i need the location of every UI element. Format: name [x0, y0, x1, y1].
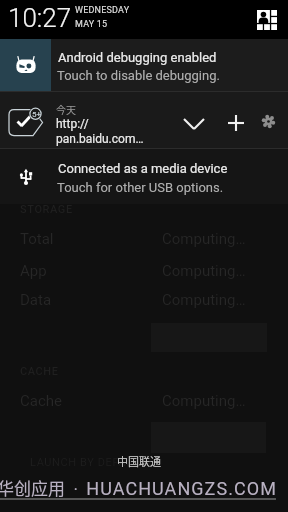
staticText: 中国联通 [117, 453, 161, 469]
staticText: CACHE [20, 365, 59, 378]
staticText: Data [20, 291, 52, 309]
staticText: 10:27 [8, 3, 72, 33]
button[interactable]: Notification settings [252, 105, 285, 138]
button[interactable]: Add [219, 106, 252, 139]
staticText: Touch for other USB options. [57, 180, 224, 195]
staticText: Cache [20, 392, 62, 410]
staticText: WEDNESDAY [75, 5, 130, 16]
staticText: 华创应用 · HUACHUANGZS.COM [0, 475, 277, 500]
staticText: Connected as a media device [58, 161, 228, 176]
staticText: 5+ [32, 110, 42, 119]
staticText: MAY 15 [75, 19, 108, 30]
staticText: Computing… [162, 291, 246, 309]
button[interactable]: Expand [177, 107, 210, 140]
staticText: Computing… [162, 262, 246, 280]
staticText: App [20, 262, 47, 280]
staticText: pan.baidu.com… [56, 132, 144, 146]
staticText: Total [20, 230, 54, 248]
staticText: STORAGE [20, 203, 73, 216]
staticText: Computing… [162, 230, 246, 248]
staticText: http:// [56, 117, 89, 131]
button[interactable]: Android debugging enabled [0, 39, 288, 91]
staticText: Android debugging enabled [58, 50, 217, 65]
staticText: Touch to disable debugging. [57, 68, 220, 83]
button[interactable]: Quick settings [252, 5, 282, 35]
staticText: 今天 [56, 102, 76, 116]
staticText: LAUNCH BY DEFAULT [30, 456, 146, 469]
staticText: Computing… [162, 392, 246, 410]
button[interactable]: 5+ [0, 92, 288, 148]
button[interactable]: Connected as a media device [0, 149, 288, 204]
